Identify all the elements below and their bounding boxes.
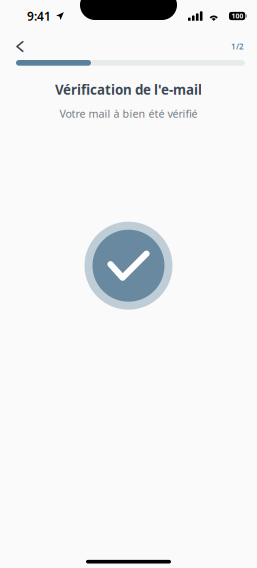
staticText: Vérification de l'e-mail: [55, 81, 202, 98]
staticText: 1/2: [231, 41, 244, 52]
staticText: 100: [231, 12, 243, 20]
button[interactable]: Back: [0, 37, 37, 56]
staticText: 9:41: [27, 8, 51, 24]
staticText: Votre mail à bien été vérifié: [59, 106, 197, 121]
